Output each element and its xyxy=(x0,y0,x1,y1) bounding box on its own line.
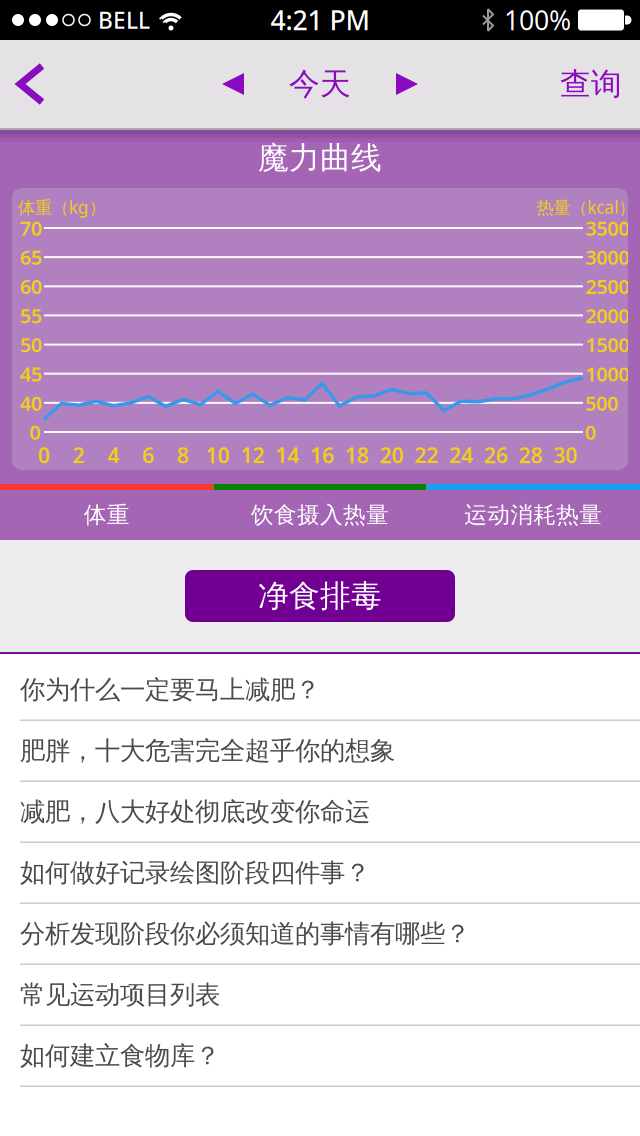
staticText: 如何做好记录绘图阶段四件事？ xyxy=(20,857,370,888)
staticText: 肥胖，十大危害完全超乎你的想象 xyxy=(20,735,395,766)
staticText: 40 xyxy=(20,390,42,416)
button[interactable]: 查询 xyxy=(560,65,640,103)
staticText: 运动消耗热量 xyxy=(464,501,602,529)
staticText: 净食排毒 xyxy=(258,577,382,615)
staticText: 12 xyxy=(241,441,265,469)
staticText: 100% xyxy=(504,2,571,38)
staticText: 今天 xyxy=(289,65,351,103)
staticText: 22 xyxy=(414,441,438,469)
staticText: 饮食摄入热量 xyxy=(251,501,389,529)
button[interactable]: Previous day xyxy=(212,73,254,95)
button[interactable]: 肥胖，十大危害完全超乎你的想象 xyxy=(0,721,640,780)
staticText: 500 xyxy=(585,390,618,416)
staticText: 55 xyxy=(20,302,42,329)
staticText: 4:21 PM xyxy=(270,2,369,38)
staticText: 10 xyxy=(206,441,230,469)
staticText: 45 xyxy=(20,360,42,387)
staticText: 18 xyxy=(345,441,369,469)
staticText: 2500 xyxy=(585,273,629,300)
staticText: 分析发现阶段你必须知道的事情有哪些？ xyxy=(20,918,470,949)
button[interactable]: 分析发现阶段你必须知道的事情有哪些？ xyxy=(0,904,640,963)
staticText: 如何建立食物库？ xyxy=(20,1040,220,1071)
staticText: 14 xyxy=(275,441,299,469)
staticText: 16 xyxy=(310,441,334,469)
staticText: 24 xyxy=(449,441,473,469)
staticText: 65 xyxy=(20,244,42,270)
button[interactable]: 净食排毒 xyxy=(185,570,455,622)
staticText: 6 xyxy=(142,441,154,469)
staticText: 1500 xyxy=(585,331,629,358)
staticText: 60 xyxy=(20,273,42,300)
staticText: 2 xyxy=(73,441,85,469)
button[interactable]: 如何做好记录绘图阶段四件事？ xyxy=(0,843,640,902)
button[interactable]: 减肥，八大好处彻底改变你命运 xyxy=(0,782,640,841)
staticText: 体重（kg） xyxy=(18,195,106,218)
staticText: 20 xyxy=(380,441,404,469)
staticText: BELL xyxy=(98,5,150,35)
staticText: 1000 xyxy=(585,360,629,387)
staticText: 3500 xyxy=(585,215,629,241)
staticText: 3000 xyxy=(585,244,629,270)
button[interactable]: 如何建立食物库？ xyxy=(0,1026,640,1085)
staticText: 28 xyxy=(519,441,543,469)
staticText: 魔力曲线 xyxy=(258,139,382,177)
staticText: 26 xyxy=(484,441,508,469)
staticText: 你为什么一定要马上减肥？ xyxy=(20,674,320,705)
staticText: 30 xyxy=(554,441,578,469)
staticText: 查询 xyxy=(560,65,622,103)
button[interactable]: 你为什么一定要马上减肥？ xyxy=(0,660,640,719)
staticText: 0 xyxy=(585,419,596,445)
staticText: 减肥，八大好处彻底改变你命运 xyxy=(20,796,370,827)
button[interactable]: Back xyxy=(0,63,58,105)
staticText: 体重 xyxy=(84,501,130,529)
staticText: 70 xyxy=(20,215,42,241)
button[interactable]: 常见运动项目列表 xyxy=(0,965,640,1024)
staticText: 0 xyxy=(29,419,40,445)
button[interactable]: Next day xyxy=(386,73,428,95)
staticText: 0 xyxy=(38,441,50,469)
staticText: 8 xyxy=(177,441,189,469)
staticText: 热量（kcal） xyxy=(536,195,635,218)
staticText: 4 xyxy=(107,441,119,469)
staticText: 常见运动项目列表 xyxy=(20,979,220,1010)
staticText: 50 xyxy=(20,331,42,358)
staticText: 2000 xyxy=(585,302,629,329)
